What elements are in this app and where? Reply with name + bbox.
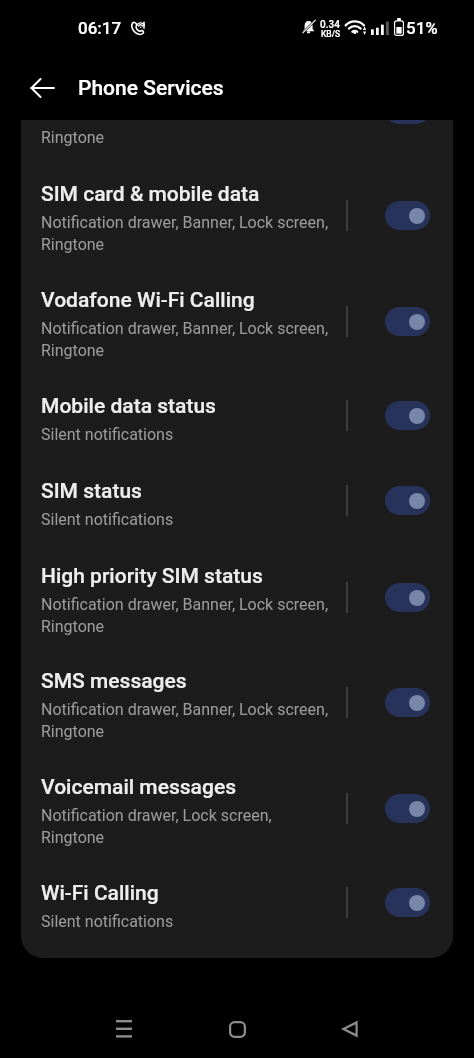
staticText: Silent notifications [41,912,174,931]
staticText: Ringtone [41,128,105,147]
button[interactable]: SIM status [21,469,453,547]
button[interactable]: Recent apps [96,1001,152,1057]
staticText: Notification drawer, Banner, Lock screen… [41,595,329,614]
staticText: Notification drawer, Banner, Lock screen… [41,213,329,232]
staticText: Ringtone [41,235,105,254]
staticText: KB/S [321,29,341,39]
staticText: SIM status [41,479,142,504]
staticText: Silent notifications [41,425,174,444]
button[interactable]: SIM card & mobile data [21,172,453,272]
button[interactable]: Toggle notification [385,201,430,230]
staticText: Notification drawer, Banner, Lock screen… [41,700,329,719]
button[interactable]: SMS messages [21,659,453,759]
button[interactable]: Home [209,1001,265,1057]
button[interactable]: Ringtone [21,120,453,130]
button[interactable]: Toggle notification [385,401,430,430]
button[interactable]: Wi-Fi Calling [21,871,453,949]
staticText: 0.34 [320,19,340,31]
button[interactable]: Vodafone Wi-Fi Calling [21,278,453,378]
staticText: Ringtone [41,722,105,741]
button[interactable]: Toggle notification [385,888,430,917]
staticText: Silent notifications [41,510,174,529]
button[interactable]: Back [18,64,66,112]
staticText: Wi-Fi Calling [41,881,159,906]
staticText: 06:17 [78,18,122,38]
button[interactable]: Toggle notification [385,486,430,515]
button[interactable]: High priority SIM status [21,554,453,654]
button[interactable]: Toggle notification [385,583,430,612]
staticText: Voicemail messages [41,775,236,800]
button[interactable]: Toggle notification [385,307,430,336]
staticText: 51% [406,18,438,38]
staticText: Notification drawer, Lock screen, [41,806,272,825]
button[interactable]: Toggle notification [385,120,430,124]
staticText: SMS messages [41,669,187,694]
staticText: Ringtone [41,341,105,360]
staticText: High priority SIM status [41,564,263,589]
staticText: Mobile data status [41,394,216,419]
button[interactable]: Voicemail messages [21,765,453,865]
button[interactable]: Toggle notification [385,688,430,717]
button[interactable]: Toggle notification [385,794,430,823]
staticText: Phone Services [78,76,224,101]
staticText: Notification drawer, Banner, Lock screen… [41,319,329,338]
staticText: Vodafone Wi-Fi Calling [41,288,255,313]
button[interactable]: Back [322,1001,378,1057]
staticText: Ringtone [41,828,105,847]
staticText: Ringtone [41,617,105,636]
button[interactable]: Mobile data status [21,384,453,462]
staticText: SIM card & mobile data [41,182,260,207]
